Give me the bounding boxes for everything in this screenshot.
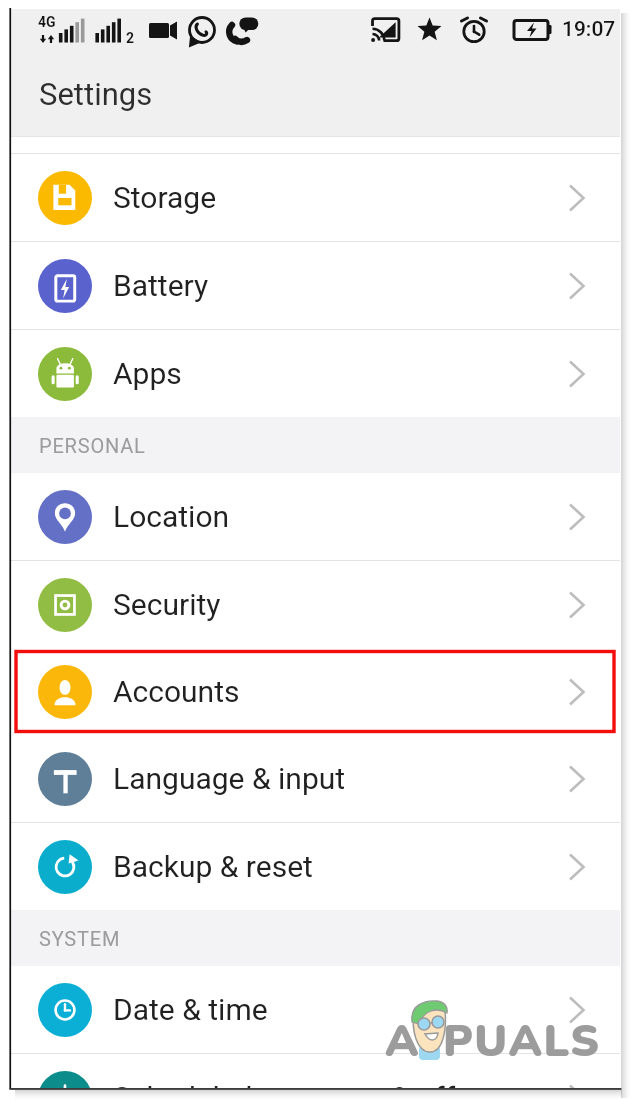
staticText: 2	[126, 30, 135, 46]
staticText: Settings	[39, 76, 153, 112]
button[interactable]: Accounts	[11, 648, 620, 735]
staticText: PERSONAL	[39, 434, 146, 457]
staticText: Backup & reset	[113, 849, 313, 884]
staticText: Scheduled power on & off	[113, 1080, 456, 1088]
button[interactable]: Scheduled power on & off	[11, 1054, 620, 1088]
button[interactable]: Security	[11, 561, 620, 648]
button[interactable]: Language & input	[11, 735, 620, 822]
button[interactable]: Apps	[11, 330, 620, 417]
staticText: Apps	[113, 356, 182, 391]
staticText: Storage	[113, 180, 217, 215]
staticText: Security	[113, 587, 221, 622]
button[interactable]: Date & time	[11, 966, 620, 1053]
button[interactable]: Battery	[11, 242, 620, 329]
staticText: Accounts	[113, 674, 240, 709]
staticText: A	[385, 1012, 419, 1072]
button[interactable]: Location	[11, 473, 620, 560]
staticText: 4G	[38, 14, 56, 30]
staticText: Location	[113, 499, 230, 534]
staticText: Battery	[113, 268, 209, 303]
button[interactable]: Storage	[11, 154, 620, 241]
staticText: Date & time	[113, 992, 268, 1027]
staticText: SYSTEM	[39, 927, 121, 950]
staticText: PUALS	[443, 1012, 601, 1072]
staticText: 19:07	[562, 17, 616, 42]
button[interactable]: Backup & reset	[11, 823, 620, 910]
staticText: Language & input	[113, 761, 346, 796]
